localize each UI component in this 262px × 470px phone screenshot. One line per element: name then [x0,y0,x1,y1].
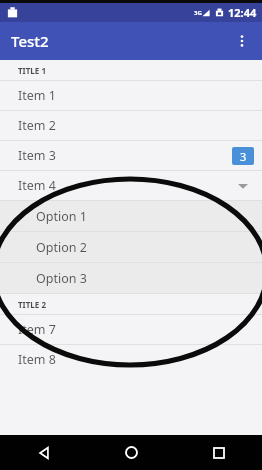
staticText: Option 3 [36,270,87,287]
button[interactable]: Item 8 [0,345,262,374]
button[interactable]: Item 2 [0,111,262,140]
button[interactable]: Recent apps [175,435,262,470]
staticText: Test2 [11,31,49,51]
staticText: TITLE 1 [18,65,46,76]
staticText: 3 [240,149,247,164]
button[interactable]: Option 3 [0,263,262,293]
staticText: Item 1 [18,87,56,104]
staticText: TITLE 2 [18,299,46,310]
button[interactable]: Option 2 [0,232,262,262]
button[interactable]: Item 4 [0,171,262,200]
button[interactable]: Item 1 [0,81,262,110]
staticText: Item 8 [18,351,56,368]
button[interactable]: More options [226,25,258,57]
button[interactable]: Item 7 [0,315,262,344]
button[interactable]: Item 3 [0,141,262,170]
staticText: Option 1 [36,208,87,225]
staticText: 3G [194,9,202,17]
staticText: Option 2 [36,239,87,256]
button[interactable]: Back [0,435,88,470]
staticText: Item 3 [18,147,56,164]
staticText: Item 7 [18,321,56,338]
staticText: Item 4 [18,177,56,194]
button[interactable]: Option 1 [0,201,262,231]
staticText: 12:44 [228,5,257,20]
staticText: Item 2 [18,117,56,134]
button[interactable]: Home [88,435,175,470]
